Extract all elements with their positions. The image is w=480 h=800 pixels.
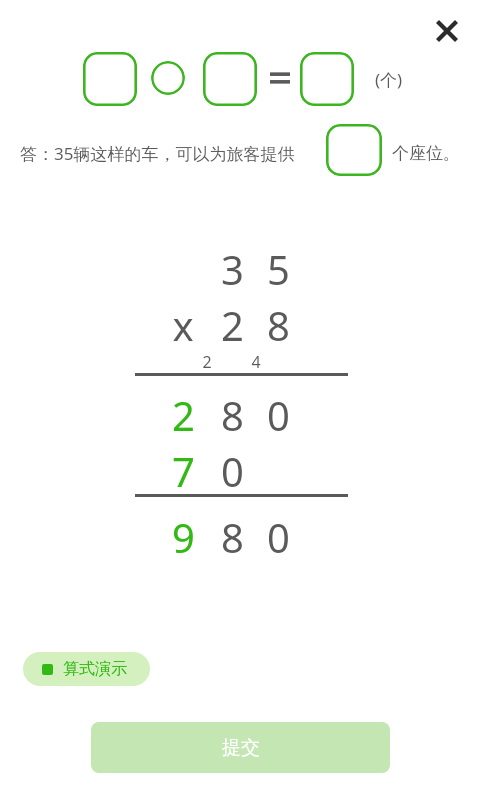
button[interactable]: Operator blank xyxy=(151,61,185,95)
button[interactable]: Answer blank xyxy=(83,52,137,106)
staticText: 4 xyxy=(251,351,261,373)
staticText: 答：35辆这样的车，可以为旅客提供 xyxy=(20,142,295,165)
staticText: 8 xyxy=(221,388,244,442)
staticText: 2 xyxy=(202,351,212,373)
staticText: 8 xyxy=(267,298,290,352)
staticText: 个座位。 xyxy=(392,143,460,164)
staticText: 0 xyxy=(267,388,290,442)
staticText: 2 xyxy=(221,298,244,352)
staticText: 8 xyxy=(221,510,244,564)
staticText: (个) xyxy=(375,68,403,91)
staticText: 7 xyxy=(172,444,195,498)
button[interactable]: Close xyxy=(427,11,467,51)
staticText: 0 xyxy=(267,510,290,564)
staticText: 5 xyxy=(267,242,290,296)
staticText: 提交 xyxy=(222,736,260,760)
button[interactable]: 算式演示 xyxy=(23,652,150,686)
staticText: 9 xyxy=(172,510,195,564)
button[interactable]: Answer blank xyxy=(203,52,257,106)
button[interactable]: Answer blank xyxy=(300,52,354,106)
button[interactable]: 提交 xyxy=(91,722,390,773)
button[interactable]: Answer blank xyxy=(326,124,382,176)
staticText: 算式演示 xyxy=(63,659,127,679)
staticText: 3 xyxy=(221,242,244,296)
staticText: 0 xyxy=(221,444,244,498)
staticText: 2 xyxy=(172,388,195,442)
staticText: x xyxy=(172,298,194,352)
